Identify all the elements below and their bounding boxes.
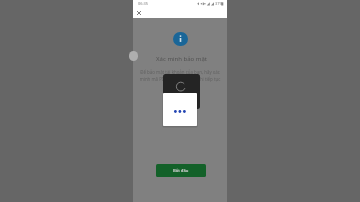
staticText: Bắt đầu — [173, 168, 189, 174]
button[interactable]: Close — [134, 8, 143, 17]
staticText: 37% — [215, 1, 223, 6]
button[interactable]: Bắt đầu — [156, 164, 206, 177]
staticText: Xác minh bảo mật — [156, 55, 207, 63]
staticText: Để bảo mật tài khoản của bạn, hãy xác mi… — [139, 69, 221, 82]
staticText: 06:35 — [138, 1, 148, 6]
